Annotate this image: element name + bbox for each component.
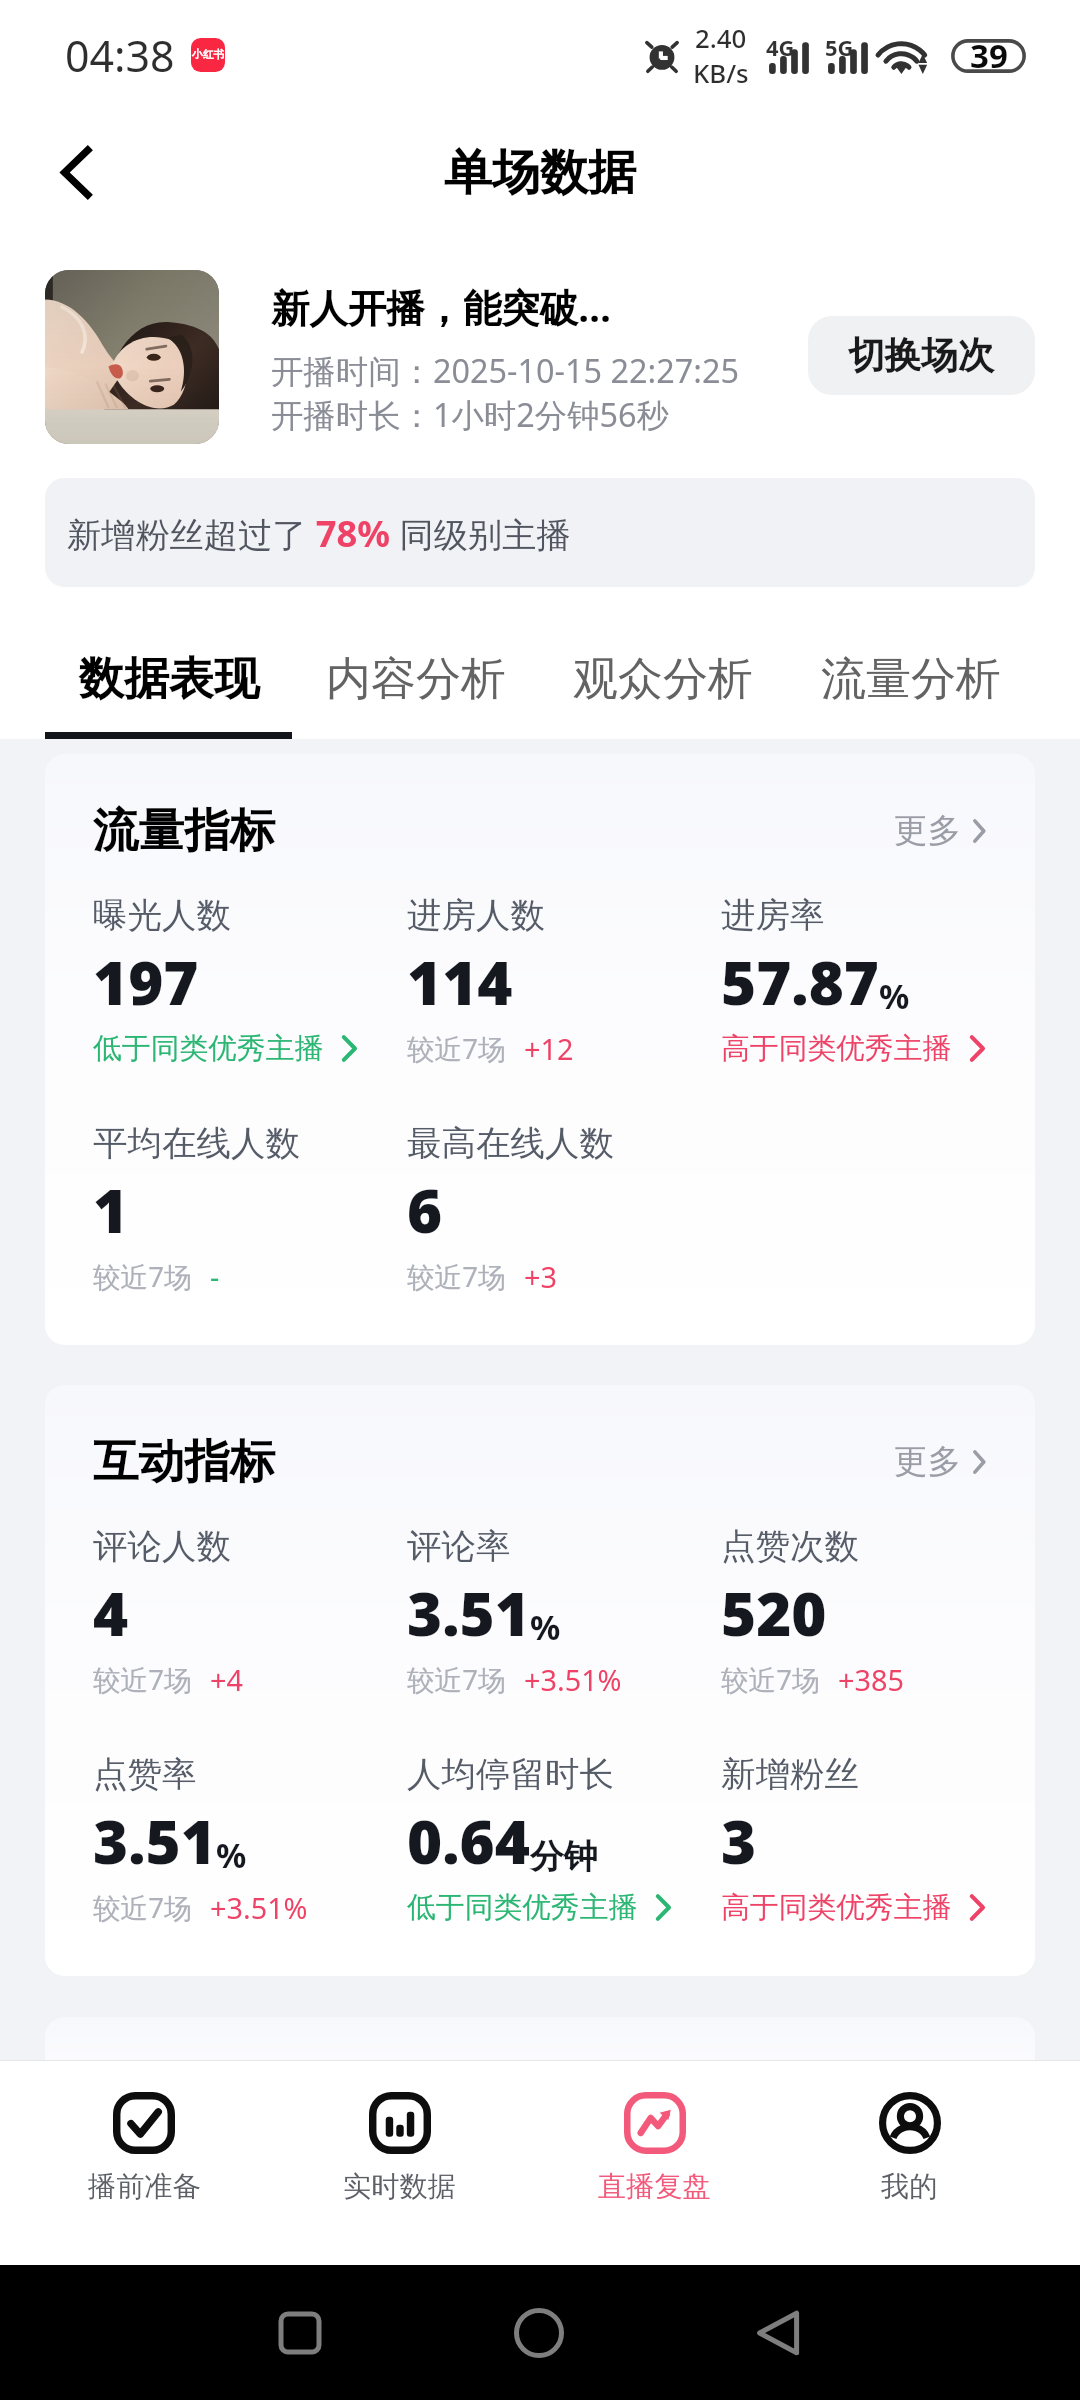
staticText: 我的 — [881, 2169, 938, 2205]
button[interactable]: 平均在线人数 — [93, 1122, 407, 1296]
staticText: 4 — [93, 1572, 129, 1654]
staticText: 较近7场 — [93, 1888, 192, 1926]
staticText: 114 — [407, 941, 513, 1023]
button[interactable]: 更多 — [894, 810, 987, 852]
staticText: 观众分析 — [573, 651, 753, 708]
staticText: +3.51% — [524, 1660, 622, 1699]
staticText: 人均停留时长 — [407, 1753, 614, 1796]
button[interactable]: Live cover — [45, 270, 219, 444]
staticText: 较近7场 — [721, 1660, 820, 1698]
staticText: 0.64 — [407, 1800, 530, 1882]
button[interactable]: 进房率 — [721, 894, 987, 1068]
staticText: 评论率 — [407, 1525, 511, 1568]
staticText: 57.87 — [721, 941, 879, 1023]
button[interactable]: 评论率 — [407, 1525, 721, 1699]
staticText: 3 — [721, 1800, 757, 1882]
staticText: 低于同类优秀主播 — [407, 1889, 638, 1925]
staticText: 5G — [825, 33, 854, 63]
staticText: 进房人数 — [407, 894, 545, 937]
button[interactable]: Recents — [279, 2312, 321, 2354]
staticText: 197 — [93, 941, 199, 1023]
staticText: 高于同类优秀主播 — [721, 1889, 952, 1925]
staticText: % — [879, 973, 910, 1019]
staticText: +3.51% — [210, 1888, 308, 1927]
staticText: 进房率 — [721, 894, 825, 937]
button[interactable]: 实时数据 — [272, 2061, 527, 2265]
staticText: 曝光人数 — [93, 894, 231, 937]
staticText: +3 — [524, 1257, 557, 1296]
button[interactable]: 进房人数 — [407, 894, 721, 1068]
button[interactable]: 我的 — [782, 2061, 1037, 2265]
staticText: 04:38 — [65, 26, 175, 84]
staticText: 实时数据 — [343, 2169, 456, 2205]
staticText: +4 — [210, 1660, 243, 1699]
button[interactable]: 内容分析 — [292, 651, 539, 739]
staticText: 520 — [721, 1572, 827, 1654]
staticText: 开播时间：2025-10-15 22:27:25 — [271, 348, 739, 392]
staticText: 新增粉丝超过了 78% 同级别主播 — [67, 508, 571, 557]
button[interactable]: 点赞率 — [93, 1753, 407, 1927]
staticText: 3.51 — [93, 1800, 216, 1882]
button[interactable]: 新增粉丝超过了 78% 同级别主播 — [45, 478, 1035, 587]
staticText: - — [210, 1257, 220, 1296]
button[interactable]: 新增粉丝 — [721, 1753, 987, 1927]
button[interactable]: 播前准备 — [16, 2061, 272, 2265]
staticText: 直播复盘 — [598, 2169, 711, 2205]
staticText: +12 — [524, 1029, 574, 1068]
staticText: 分钟 — [530, 1836, 598, 1878]
staticText: 内容分析 — [326, 651, 506, 708]
staticText: 数据表现 — [79, 651, 259, 708]
staticText: 6 — [407, 1169, 443, 1251]
staticText: 点赞率 — [93, 1753, 197, 1796]
button[interactable]: 最高在线人数 — [407, 1122, 721, 1296]
staticText: 平均在线人数 — [93, 1122, 300, 1165]
button[interactable]: 人均停留时长 — [407, 1753, 721, 1927]
staticText: 新增粉丝 — [721, 1753, 859, 1796]
staticText: 更多 — [894, 810, 962, 852]
staticText: 点赞次数 — [721, 1525, 859, 1568]
staticText: % — [530, 1604, 561, 1650]
staticText: 1 — [93, 1169, 129, 1251]
button[interactable]: 点赞次数 — [721, 1525, 987, 1699]
button[interactable]: 曝光人数 — [93, 894, 407, 1068]
staticText: 小红书 — [192, 48, 225, 62]
staticText: 较近7场 — [407, 1660, 506, 1698]
button[interactable]: 观众分析 — [539, 651, 787, 739]
button[interactable]: Back — [15, 110, 140, 235]
staticText: 评论人数 — [93, 1525, 231, 1568]
staticText: % — [216, 1832, 247, 1878]
staticText: 切换场次 — [848, 333, 995, 379]
staticText: 新人开播，能突破… — [271, 281, 611, 333]
staticText: 较近7场 — [93, 1257, 192, 1295]
staticText: 较近7场 — [407, 1029, 506, 1067]
button[interactable]: 流量分析 — [787, 651, 1035, 739]
staticText: 开播时长：1小时2分钟56秒 — [271, 392, 670, 436]
staticText: 低于同类优秀主播 — [93, 1030, 324, 1066]
staticText: 更多 — [894, 1441, 962, 1483]
staticText: 较近7场 — [93, 1660, 192, 1698]
button[interactable]: Back — [757, 2311, 801, 2355]
button[interactable]: 切换场次 — [808, 316, 1035, 395]
staticText: +385 — [838, 1660, 904, 1699]
staticText: 高于同类优秀主播 — [721, 1030, 952, 1066]
staticText: 3.51 — [407, 1572, 530, 1654]
staticText: 4G — [766, 33, 795, 63]
staticText: 流量分析 — [821, 651, 1001, 708]
staticText: 2.40 — [695, 20, 747, 55]
button[interactable]: 数据表现 — [45, 651, 292, 739]
button[interactable]: 直播复盘 — [527, 2061, 782, 2265]
staticText: 播前准备 — [88, 2169, 201, 2205]
staticText: 39 — [970, 33, 1008, 78]
button[interactable]: 评论人数 — [93, 1525, 407, 1699]
button[interactable]: 更多 — [894, 1441, 987, 1483]
staticText: 较近7场 — [407, 1257, 506, 1295]
staticText: 流量指标 — [93, 802, 276, 859]
button[interactable]: Home — [514, 2308, 564, 2358]
staticText: 单场数据 — [444, 143, 636, 203]
staticText: 互动指标 — [93, 1433, 276, 1490]
staticText: KB/s — [693, 55, 749, 90]
staticText: 最高在线人数 — [407, 1122, 614, 1165]
